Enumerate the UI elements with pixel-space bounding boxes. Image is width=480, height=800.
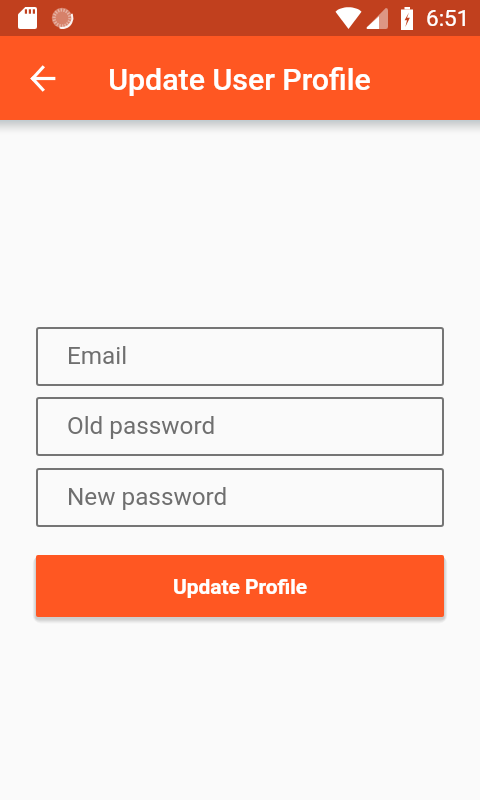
staticText: Update Profile [173, 575, 308, 599]
button[interactable]: New password [36, 468, 444, 527]
staticText: Update User Profile [108, 62, 371, 98]
staticText: New password [67, 482, 228, 510]
button[interactable]: Old password [36, 397, 444, 456]
staticText: Email [67, 341, 128, 369]
staticText: 6:51 [426, 5, 470, 31]
button[interactable]: Navigate up [19, 54, 67, 102]
button[interactable]: Update Profile [36, 555, 444, 617]
staticText: Old password [67, 411, 216, 439]
button[interactable]: Email [36, 327, 444, 386]
